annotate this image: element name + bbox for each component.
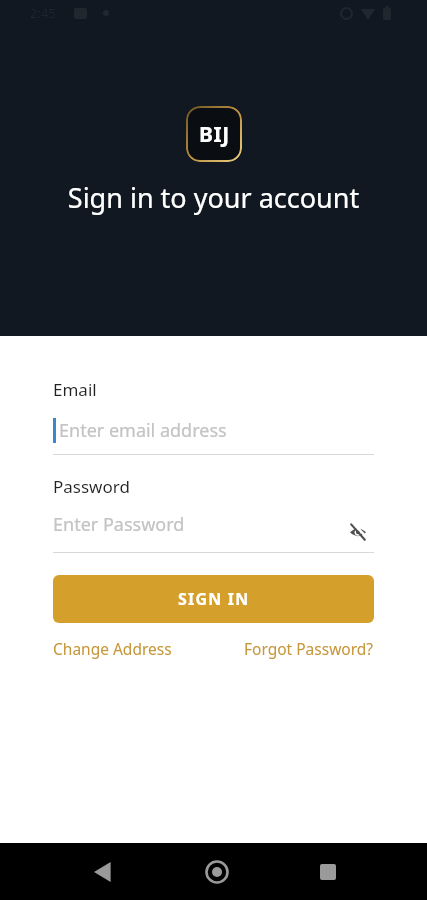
staticText: Enter email address [59, 418, 227, 443]
button[interactable] [205, 860, 229, 884]
button[interactable]: Change Address [53, 638, 172, 659]
staticText: 2:45 [30, 4, 56, 22]
button[interactable]: Enter Password [53, 512, 374, 537]
button[interactable] [93, 862, 113, 882]
staticText: BIJ [199, 120, 230, 149]
staticText: Sign in to your account [0, 179, 427, 216]
staticText: Enter Password [53, 512, 349, 537]
button[interactable]: Forgot Password? [244, 638, 374, 659]
button[interactable] [320, 864, 336, 880]
staticText: SIGN IN [178, 588, 250, 610]
staticText: Email [53, 378, 97, 401]
button[interactable]: SIGN IN [53, 575, 374, 623]
button[interactable] [349, 523, 367, 541]
staticText: Password [53, 475, 130, 498]
button[interactable]: Enter email address [53, 418, 374, 443]
